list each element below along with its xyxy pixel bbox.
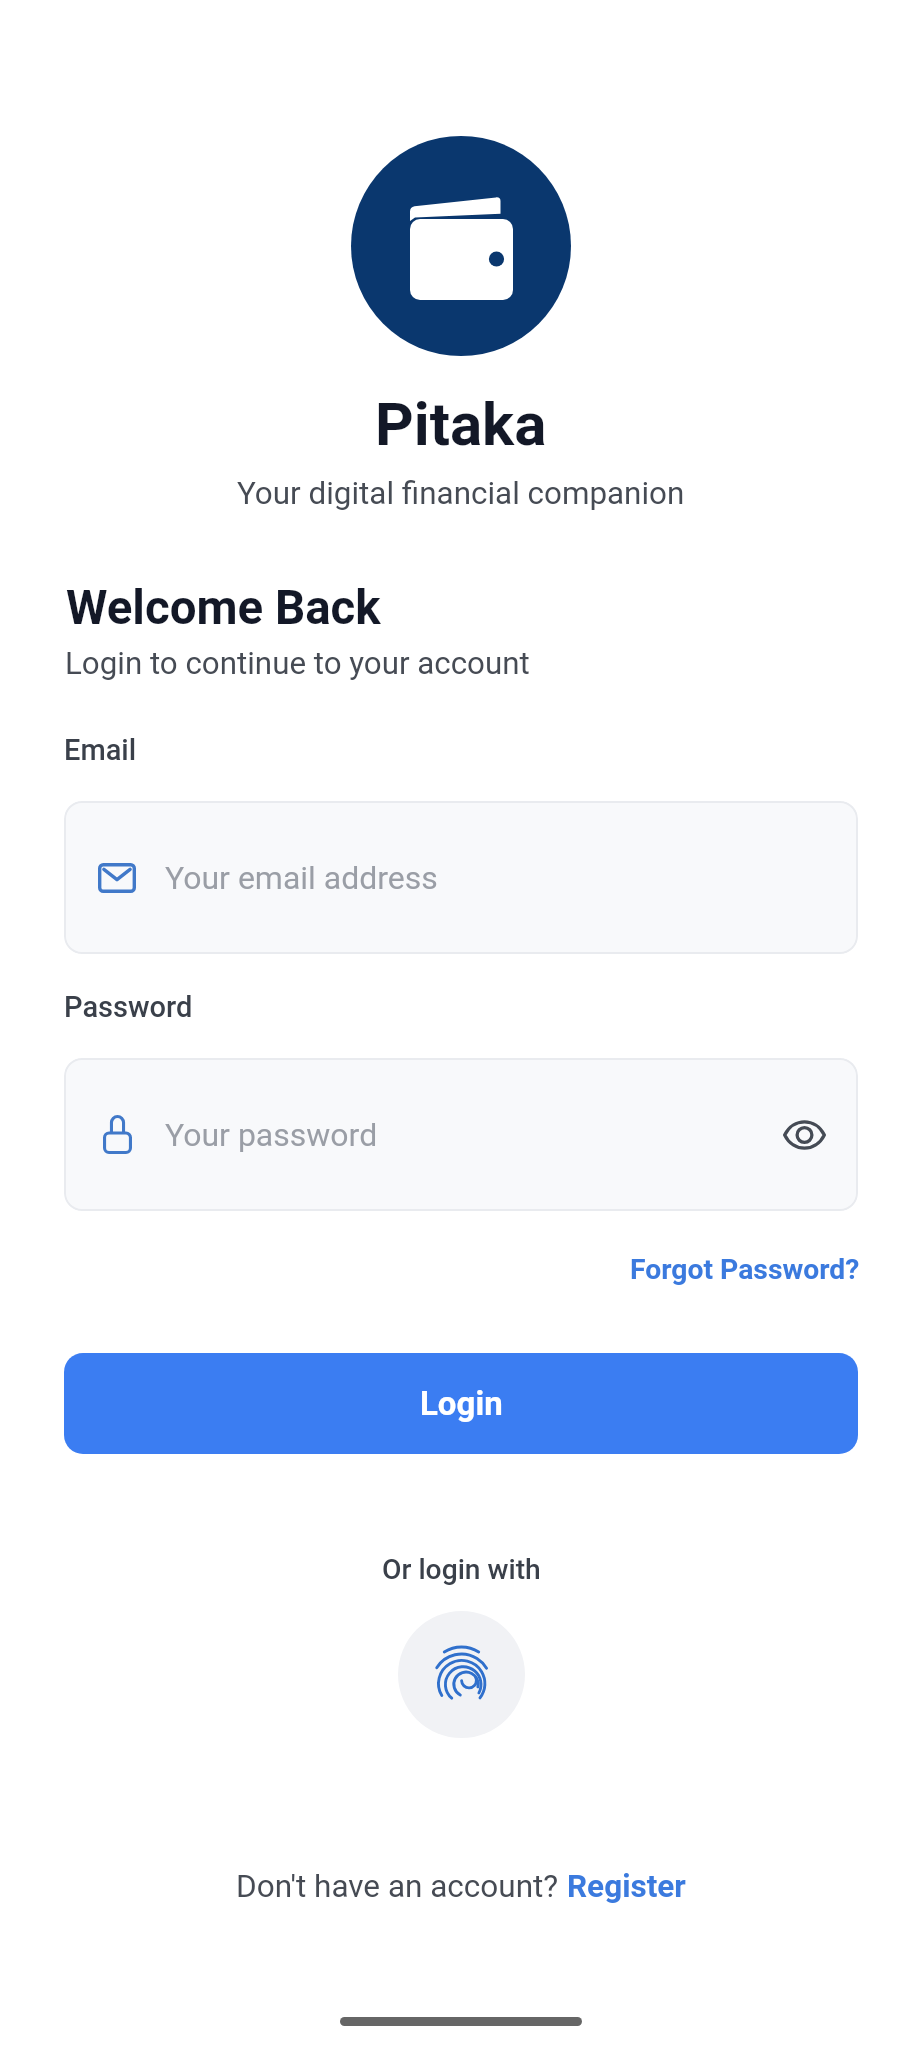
- staticText: Forgot Password?: [630, 1253, 860, 1286]
- staticText: Email: [64, 733, 137, 767]
- staticText: Welcome Back: [66, 580, 381, 636]
- button[interactable]: Your password: [64, 1058, 858, 1211]
- button[interactable]: Register: [567, 1868, 686, 1905]
- button[interactable]: Forgot Password?: [630, 1253, 860, 1286]
- button[interactable]: Login with fingerprint: [398, 1611, 525, 1738]
- button[interactable]: Show password: [772, 1058, 836, 1211]
- staticText: Don't have an account?: [236, 1868, 567, 1905]
- staticText: Or login with: [382, 1553, 541, 1586]
- staticText: Login to continue to your account: [65, 645, 530, 682]
- button[interactable]: Your email address: [64, 801, 858, 954]
- staticText: Password: [64, 990, 193, 1024]
- button[interactable]: Login: [64, 1353, 858, 1454]
- staticText: Pitaka: [375, 389, 547, 459]
- staticText: Login: [420, 1384, 503, 1423]
- staticText: Your digital financial companion: [237, 475, 685, 512]
- staticText: Register: [567, 1868, 686, 1905]
- staticText: Your email address: [165, 859, 438, 897]
- staticText: Your password: [165, 1116, 378, 1154]
